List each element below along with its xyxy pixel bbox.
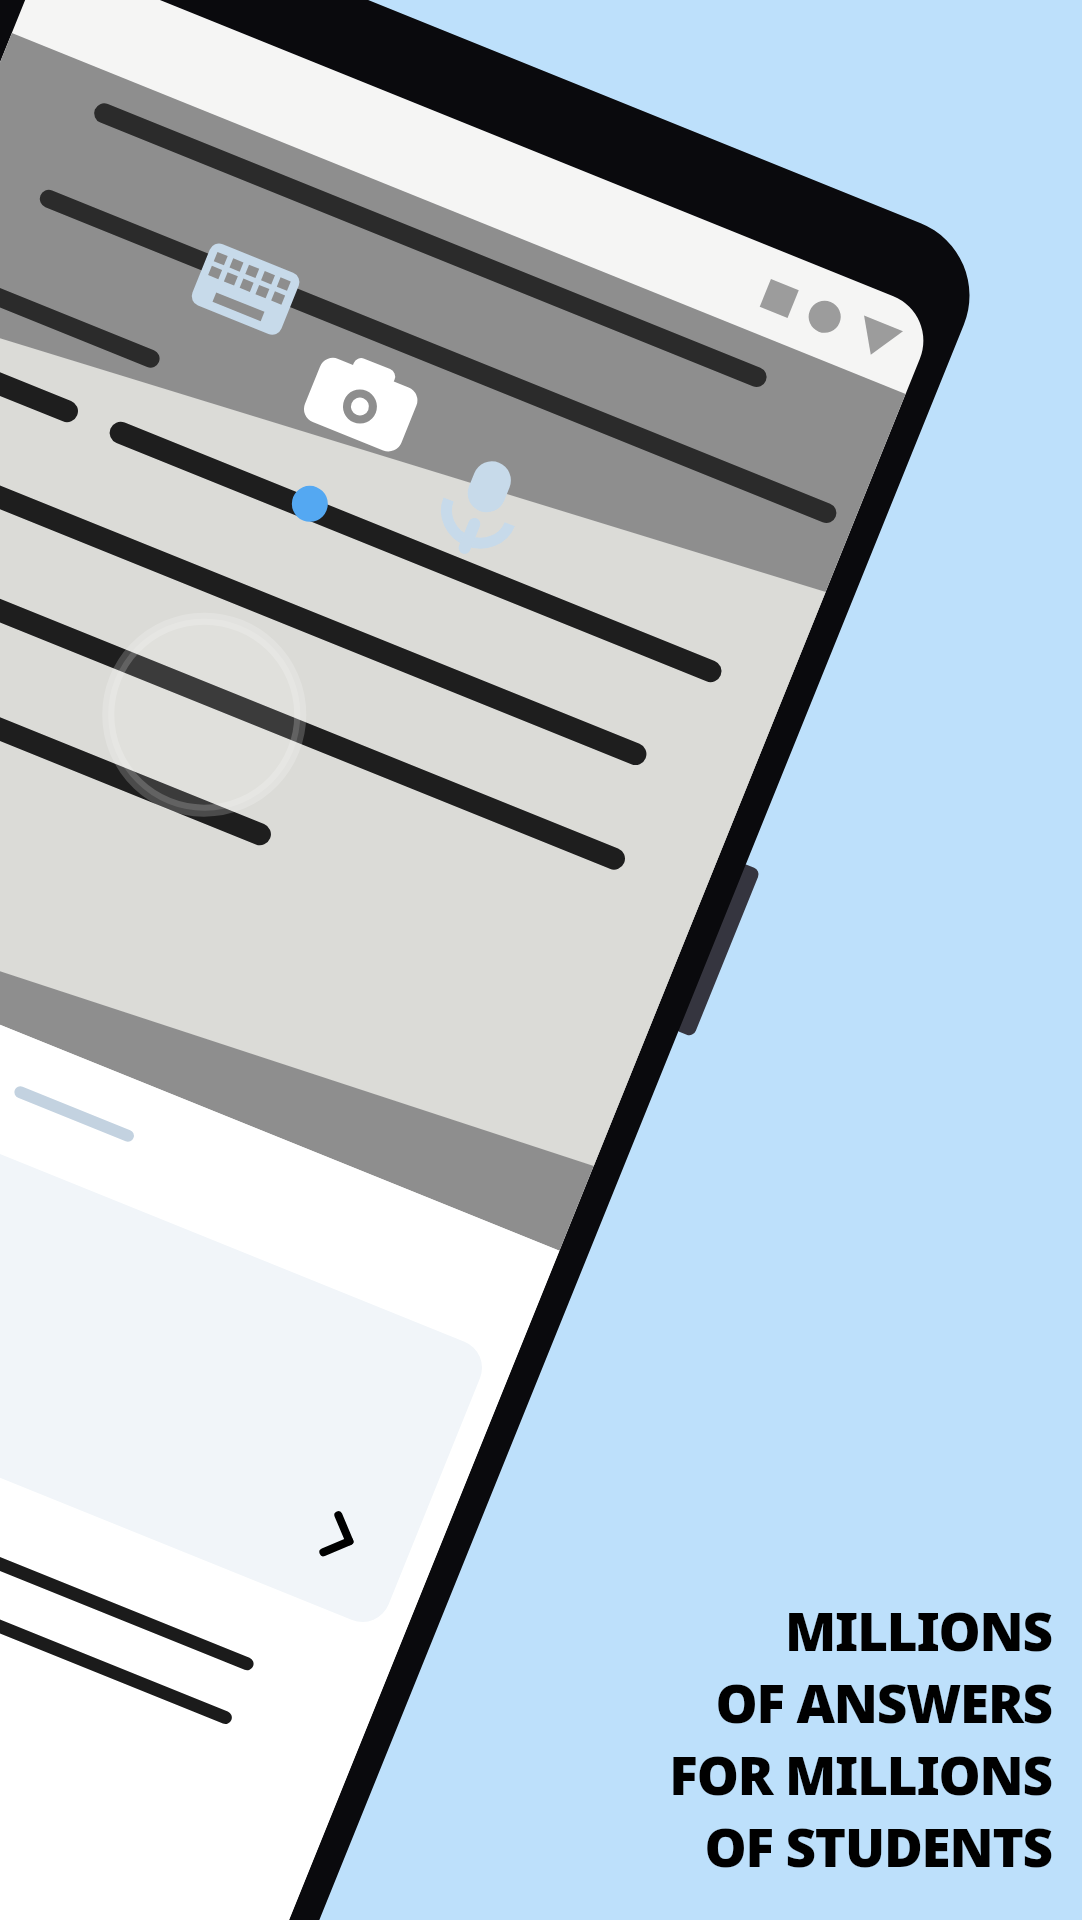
- staticText: FOR MILLIONS: [669, 1738, 1052, 1810]
- button[interactable]: Scan problem with camera: [150, 170, 320, 290]
- button[interactable]: MILLIONS: [669, 1594, 1052, 1882]
- staticText: OF STUDENTS: [704, 1810, 1052, 1882]
- staticText: MILLIONS: [784, 1594, 1052, 1666]
- staticText: OF ANSWERS: [715, 1666, 1052, 1738]
